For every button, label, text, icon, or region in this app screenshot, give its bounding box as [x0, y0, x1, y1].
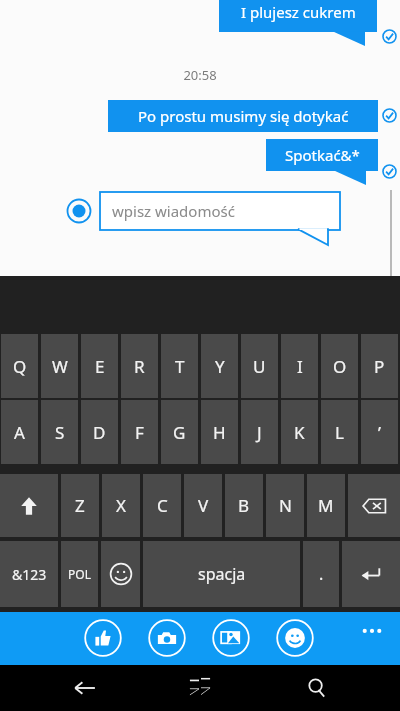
staticText: Q [13, 355, 27, 378]
button[interactable]: T [161, 334, 198, 398]
button[interactable]: Start [177, 670, 223, 706]
button[interactable]: spacja [143, 541, 300, 607]
button[interactable]: I plujesz cukrem [219, 0, 377, 32]
staticText: 20:58 [183, 66, 217, 84]
staticText: D [93, 421, 106, 444]
button[interactable]: Emoji [276, 619, 314, 657]
staticText: I [297, 355, 303, 378]
staticText: . [319, 563, 324, 585]
button[interactable]: Shift [0, 474, 58, 537]
staticText: C [157, 494, 168, 517]
staticText: H [213, 421, 226, 444]
button[interactable]: V [184, 474, 222, 537]
staticText: W [52, 355, 68, 378]
staticText: Spotkać&* [285, 145, 360, 165]
button[interactable]: F [121, 400, 158, 464]
staticText: wpisz wiadomość [112, 201, 235, 221]
button[interactable]: More options [352, 614, 392, 654]
button[interactable]: M [307, 474, 345, 537]
staticText: POL [68, 566, 91, 582]
button[interactable]: Enter [342, 541, 400, 607]
staticText: E [95, 355, 105, 378]
staticText: S [55, 421, 65, 444]
button[interactable]: ’ [361, 400, 398, 464]
button[interactable]: K [281, 400, 318, 464]
button[interactable]: D [81, 400, 118, 464]
staticText: I plujesz cukrem [241, 2, 356, 22]
staticText: V [198, 494, 209, 517]
button[interactable]: Backspace [348, 474, 400, 537]
button[interactable]: J [241, 400, 278, 464]
button[interactable]: wpisz wiadomość [100, 192, 340, 230]
button[interactable]: Back [62, 671, 108, 705]
staticText: O [333, 355, 347, 378]
staticText: P [374, 355, 385, 378]
staticText: X [116, 494, 126, 517]
button[interactable]: E [81, 334, 118, 398]
button[interactable]: . [303, 541, 339, 607]
staticText: Po prostu musimy się dotykać [138, 106, 349, 126]
staticText: A [14, 421, 25, 444]
staticText: T [175, 355, 185, 378]
staticText: K [294, 421, 305, 444]
staticText: G [173, 421, 186, 444]
staticText: ’ [378, 421, 381, 444]
staticText: M [318, 494, 334, 517]
button[interactable]: R [121, 334, 158, 398]
button[interactable]: N [266, 474, 304, 537]
button[interactable]: C [143, 474, 181, 537]
button[interactable]: Send options [66, 198, 92, 224]
staticText: L [335, 421, 344, 444]
button[interactable]: Z [61, 474, 99, 537]
button[interactable]: U [241, 334, 278, 398]
button[interactable]: Po prostu musimy się dotykać [108, 100, 378, 132]
button[interactable]: A [1, 400, 38, 464]
staticText: J [257, 421, 262, 444]
button[interactable]: Photos [212, 619, 250, 657]
staticText: Y [215, 355, 225, 378]
button[interactable]: G [161, 400, 198, 464]
staticText: Z [75, 494, 85, 517]
button[interactable]: Camera [148, 619, 186, 657]
staticText: R [134, 355, 145, 378]
button[interactable]: I [281, 334, 318, 398]
staticText: spacja [198, 563, 246, 585]
button[interactable]: H [201, 400, 238, 464]
button[interactable]: Like [84, 619, 122, 657]
button[interactable]: Spotkać&* [266, 139, 378, 171]
button[interactable]: O [321, 334, 358, 398]
button[interactable]: Y [201, 334, 238, 398]
button[interactable]: L [321, 400, 358, 464]
staticText: N [279, 494, 292, 517]
button[interactable]: P [361, 334, 398, 398]
button[interactable]: Q [1, 334, 38, 398]
button[interactable]: W [41, 334, 78, 398]
staticText: U [253, 355, 266, 378]
button[interactable]: Emoji [101, 541, 140, 607]
button[interactable]: S [41, 400, 78, 464]
button[interactable]: X [102, 474, 140, 537]
button[interactable]: POL [61, 541, 98, 607]
staticText: B [238, 494, 250, 517]
button[interactable]: Search [294, 671, 340, 705]
staticText: &123 [12, 565, 47, 584]
staticText: F [135, 421, 144, 444]
button[interactable]: &123 [0, 541, 58, 607]
button[interactable]: 20:58 [160, 66, 240, 84]
button[interactable]: B [225, 474, 263, 537]
